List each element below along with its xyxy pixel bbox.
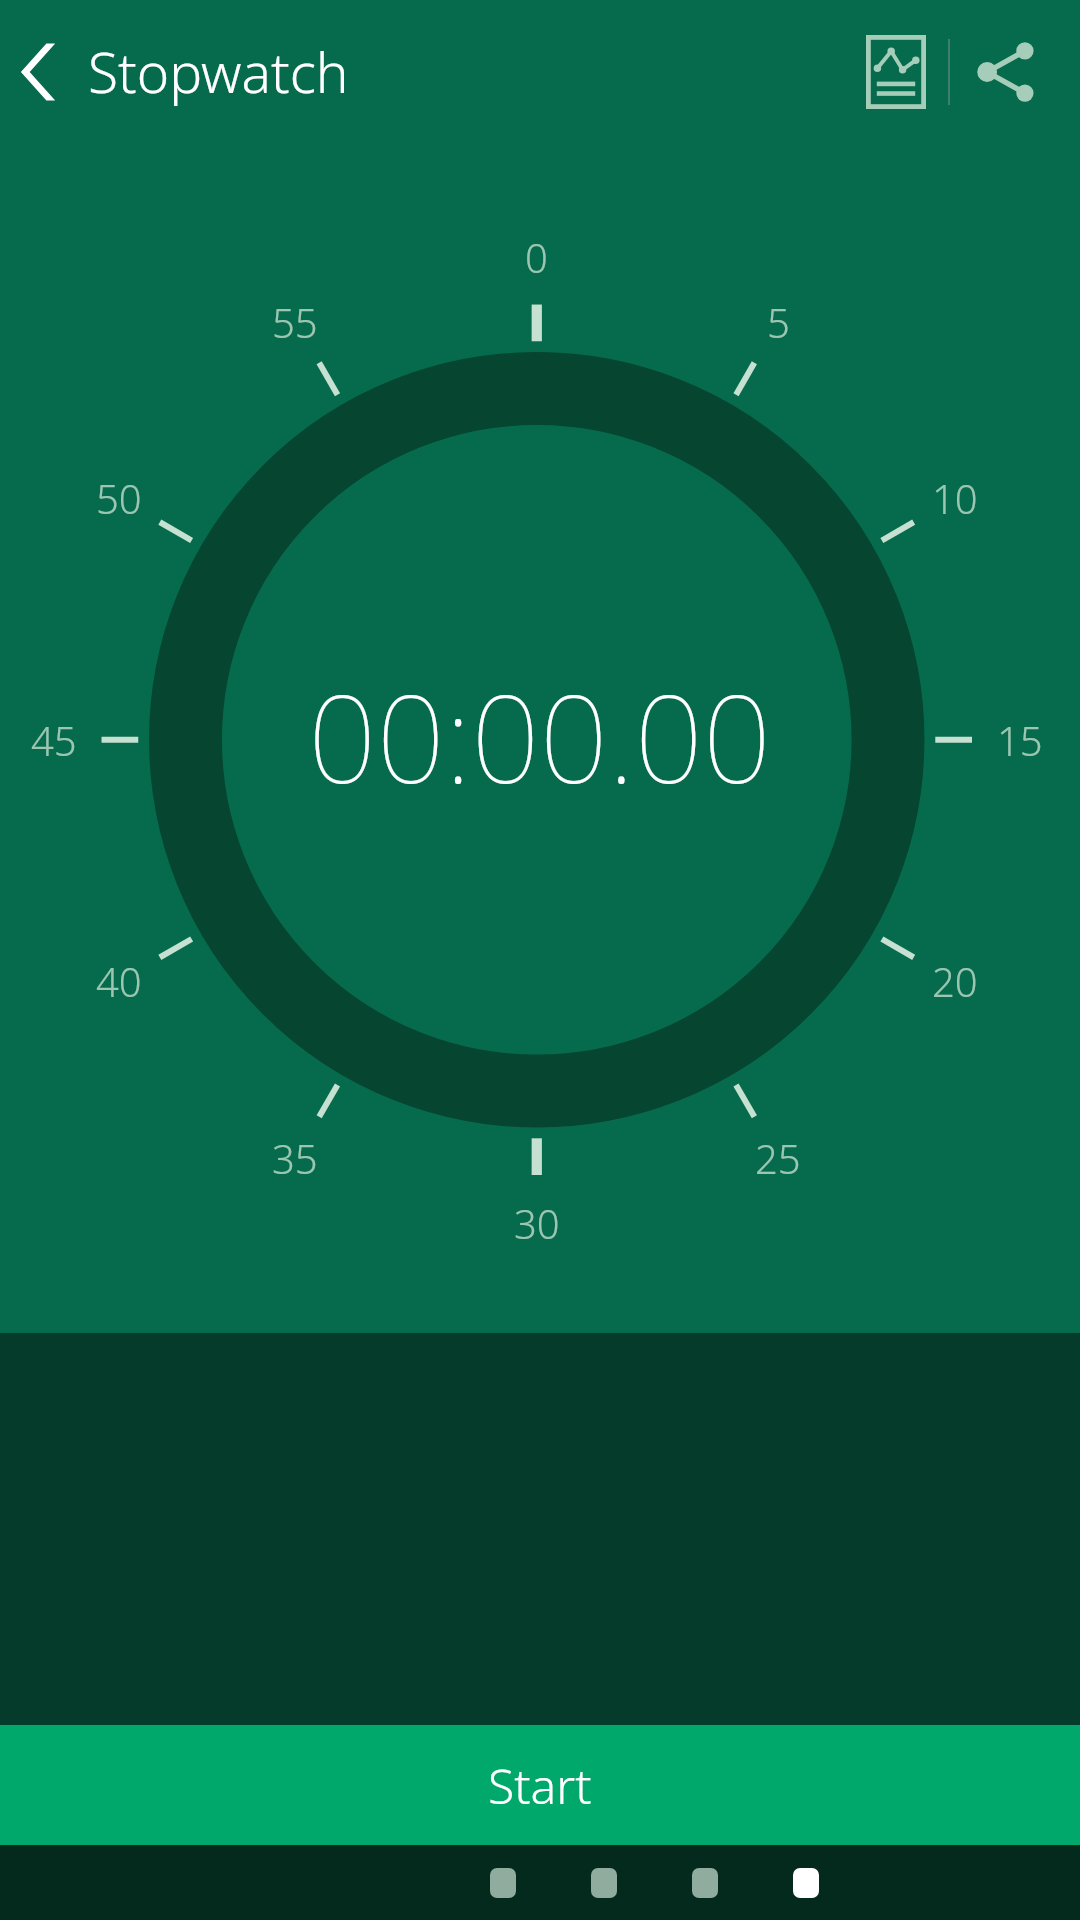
- button[interactable]: Page 3: [692, 1868, 718, 1898]
- staticText: 40: [96, 954, 142, 1008]
- staticText: 55: [272, 295, 318, 349]
- button[interactable]: Page 1: [490, 1868, 516, 1898]
- button[interactable]: Start: [0, 1725, 1080, 1845]
- staticText: 35: [272, 1131, 318, 1185]
- staticText: 10: [932, 471, 978, 525]
- button[interactable]: Back: [0, 34, 359, 109]
- staticText: 00:00.00: [308, 655, 772, 818]
- staticText: 45: [31, 713, 77, 767]
- button[interactable]: Page 4: [793, 1868, 819, 1898]
- button[interactable]: Records: [844, 0, 948, 143]
- staticText: 15: [997, 713, 1043, 767]
- staticText: 30: [514, 1196, 560, 1250]
- button[interactable]: Share: [950, 0, 1064, 143]
- staticText: Start: [488, 1753, 592, 1818]
- staticText: 0: [525, 230, 548, 284]
- staticText: 25: [755, 1131, 801, 1185]
- staticText: 5: [767, 295, 790, 349]
- staticText: 50: [96, 471, 142, 525]
- staticText: 20: [932, 954, 978, 1008]
- staticText: Stopwatch: [88, 34, 349, 109]
- button[interactable]: Page 2: [591, 1868, 617, 1898]
